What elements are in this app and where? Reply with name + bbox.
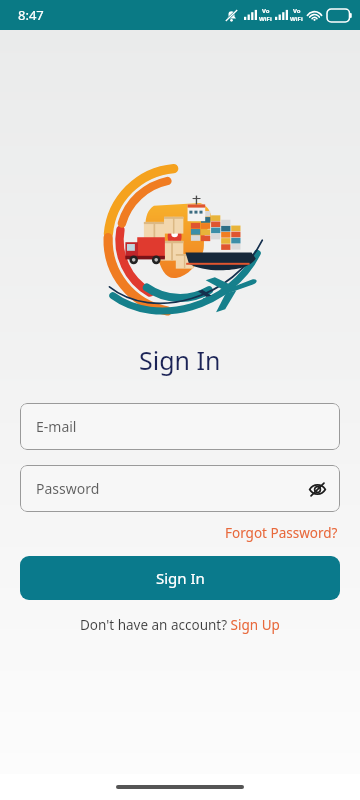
staticText: Password: [36, 479, 100, 498]
staticText: Sign In: [139, 343, 221, 377]
staticText: Vo: [293, 7, 301, 15]
staticText: E-mail: [36, 417, 77, 436]
staticText: Vo: [262, 7, 270, 15]
staticText: WiFi: [259, 15, 272, 23]
button[interactable]: Forgot Password?: [221, 520, 342, 546]
staticText: Don't have an account? Sign Up: [80, 616, 280, 634]
staticText: Sign In: [156, 568, 205, 588]
staticText: 8:47: [18, 6, 44, 24]
button[interactable]: Don't have an account? Sign Up: [74, 613, 286, 637]
staticText: WiFi: [290, 15, 303, 23]
button[interactable]: Show password: [304, 476, 330, 502]
staticText: Forgot Password?: [225, 524, 338, 542]
button[interactable]: Sign In: [20, 556, 340, 600]
button[interactable]: Password: [20, 465, 340, 512]
button[interactable]: E-mail: [20, 403, 340, 450]
